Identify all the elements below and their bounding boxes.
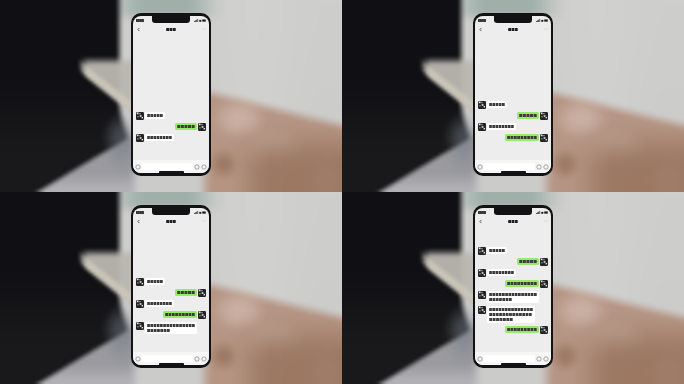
- button[interactable]: Avatar: [136, 322, 144, 330]
- button[interactable]: [147, 280, 163, 283]
- button[interactable]: Avatar: [478, 269, 486, 277]
- button[interactable]: [507, 328, 537, 331]
- button[interactable]: Avatar: [478, 101, 486, 109]
- button[interactable]: More options: [543, 218, 549, 224]
- button[interactable]: Back: [477, 26, 484, 33]
- button[interactable]: More: [201, 164, 207, 170]
- button[interactable]: Voice message: [135, 356, 141, 362]
- button[interactable]: More options: [201, 26, 207, 32]
- button[interactable]: Avatar: [198, 311, 206, 319]
- button[interactable]: Back: [135, 26, 142, 33]
- button[interactable]: Emoji: [194, 356, 200, 362]
- button[interactable]: Avatar: [540, 258, 548, 266]
- button[interactable]: [489, 293, 537, 301]
- button[interactable]: [489, 103, 505, 106]
- button[interactable]: [519, 260, 537, 263]
- button[interactable]: Emoji: [536, 164, 542, 170]
- button[interactable]: Avatar: [540, 326, 548, 334]
- button[interactable]: [489, 271, 514, 274]
- button[interactable]: More: [201, 356, 207, 362]
- button[interactable]: [177, 125, 195, 128]
- button[interactable]: Avatar: [540, 134, 548, 142]
- button[interactable]: Avatar: [136, 112, 144, 120]
- button[interactable]: Back: [477, 218, 484, 225]
- button[interactable]: [489, 249, 505, 252]
- button[interactable]: [147, 114, 163, 117]
- button[interactable]: [165, 313, 195, 316]
- button[interactable]: Avatar: [478, 306, 486, 314]
- button[interactable]: [147, 324, 195, 332]
- button[interactable]: [147, 136, 172, 139]
- button[interactable]: Avatar: [478, 291, 486, 299]
- button[interactable]: More options: [543, 26, 549, 32]
- button[interactable]: Emoji: [194, 164, 200, 170]
- button[interactable]: Avatar: [478, 247, 486, 255]
- button[interactable]: Voice message: [477, 164, 483, 170]
- button[interactable]: Avatar: [478, 123, 486, 131]
- button[interactable]: Avatar: [198, 289, 206, 297]
- button[interactable]: Back: [135, 218, 142, 225]
- button[interactable]: [147, 302, 172, 305]
- button[interactable]: [489, 125, 514, 128]
- button[interactable]: Emoji: [536, 356, 542, 362]
- button[interactable]: Avatar: [136, 278, 144, 286]
- button[interactable]: [519, 114, 537, 117]
- button[interactable]: More options: [201, 218, 207, 224]
- button[interactable]: More: [543, 356, 549, 362]
- button[interactable]: Avatar: [136, 300, 144, 308]
- button[interactable]: Voice message: [135, 164, 141, 170]
- button[interactable]: [489, 308, 533, 321]
- button[interactable]: Avatar: [136, 134, 144, 142]
- button[interactable]: [507, 282, 537, 285]
- button[interactable]: Avatar: [540, 112, 548, 120]
- button[interactable]: Avatar: [540, 280, 548, 288]
- button[interactable]: Voice message: [477, 356, 483, 362]
- button[interactable]: [507, 136, 537, 139]
- button[interactable]: [177, 291, 195, 294]
- button[interactable]: More: [543, 164, 549, 170]
- button[interactable]: Avatar: [198, 123, 206, 131]
